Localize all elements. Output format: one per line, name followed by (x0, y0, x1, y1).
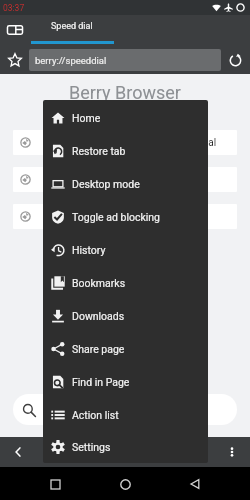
button[interactable]: berry://speeddial (13, 130, 237, 155)
staticText: Desktop mode (72, 178, 140, 190)
button[interactable] (13, 394, 237, 425)
staticText: Home (72, 112, 101, 124)
button[interactable]: Recents (40, 469, 70, 499)
button[interactable]: Back (0, 437, 36, 467)
staticText: 03:37 (3, 3, 25, 13)
button[interactable]: Toggle ad blocking (43, 200, 208, 233)
staticText: Action list (72, 409, 119, 421)
button[interactable]: More options (214, 437, 250, 467)
button[interactable]: Home (43, 101, 208, 134)
staticText: Downloads (72, 310, 125, 322)
button[interactable]: Back (180, 469, 210, 499)
staticText: Berry Browser (69, 82, 181, 103)
button[interactable]: Tabs (0, 15, 30, 41)
staticText: History (72, 244, 106, 256)
button[interactable]: berry://speeddial (29, 49, 221, 71)
staticText: Restore tab (72, 145, 126, 157)
staticText: berry://speeddial (35, 55, 107, 66)
button[interactable]: Share page (43, 332, 208, 365)
button[interactable]: Restore tab (43, 134, 208, 167)
button[interactable]: Bookmark (0, 44, 29, 74)
button[interactable]: Desktop mode (43, 167, 208, 200)
button[interactable]: Action list (43, 398, 208, 431)
button[interactable]: Downloads (43, 299, 208, 332)
staticText: Find in Page (72, 376, 130, 388)
staticText: Toggle ad blocking (72, 211, 161, 223)
button[interactable] (13, 167, 237, 192)
button[interactable]: History (43, 233, 208, 266)
staticText: Bookmarks (72, 277, 126, 289)
button[interactable]: Bookmarks (43, 266, 208, 299)
button[interactable]: Find in Page (43, 365, 208, 398)
staticText: Speed dial (51, 21, 93, 32)
staticText: Settings (72, 441, 111, 453)
staticText: berry://speeddial (141, 137, 217, 149)
button[interactable] (13, 204, 237, 229)
button[interactable]: Reload (221, 49, 250, 71)
staticText: Share page (72, 343, 125, 355)
button[interactable]: Home (110, 469, 140, 499)
button[interactable]: Settings (43, 431, 208, 463)
